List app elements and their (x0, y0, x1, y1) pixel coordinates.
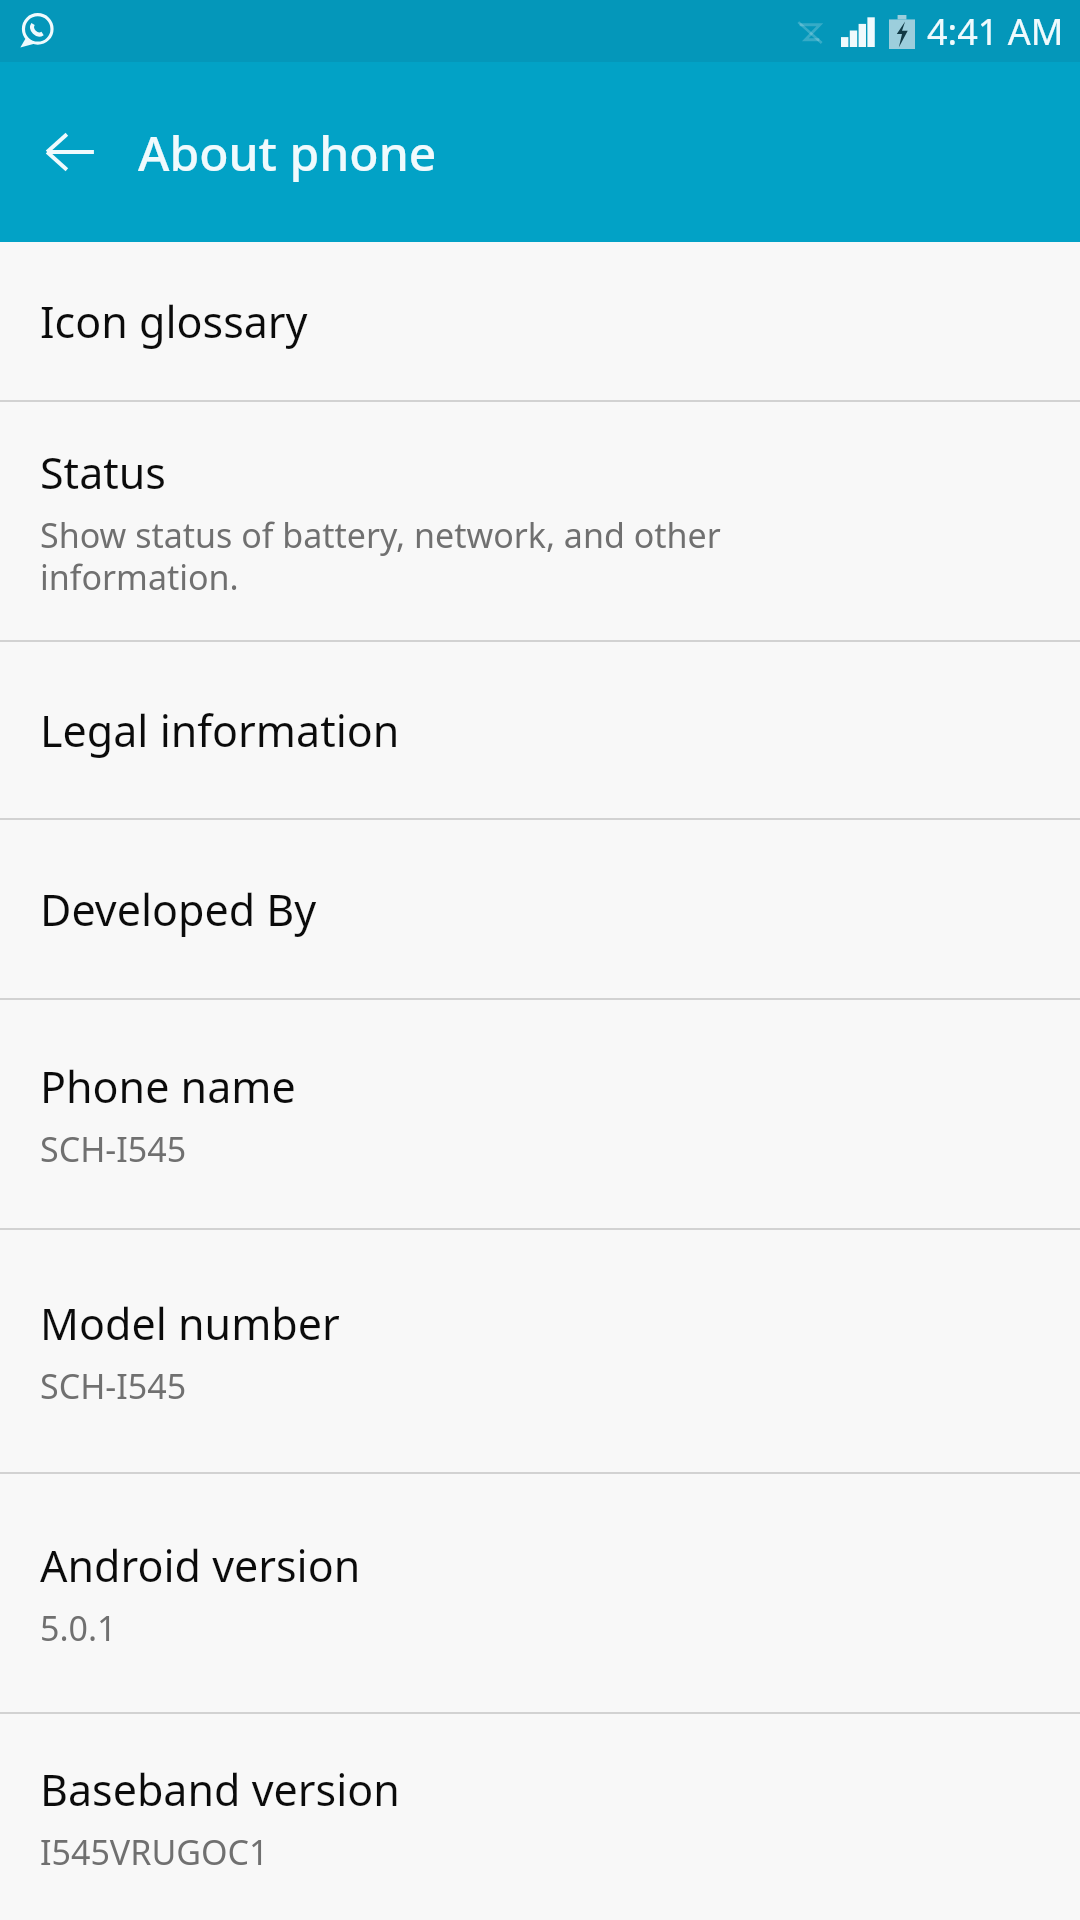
button[interactable]: Baseband version (0, 1714, 1080, 1920)
button[interactable]: Status (0, 402, 1080, 640)
staticText: Icon glossary (40, 292, 308, 351)
button[interactable]: Icon glossary (0, 242, 1080, 400)
staticText: SCH-I545 (40, 1126, 187, 1172)
staticText: Baseband version (40, 1760, 400, 1819)
staticText: About phone (138, 120, 437, 185)
button[interactable]: Legal information (0, 642, 1080, 818)
staticText: Status (40, 443, 166, 502)
staticText: Phone name (40, 1057, 296, 1116)
button[interactable]: Developed By (0, 820, 1080, 998)
button[interactable]: Back (24, 106, 116, 198)
staticText: SCH-I545 (40, 1363, 187, 1409)
staticText: Developed By (40, 880, 317, 939)
staticText: 5.0.1 (40, 1605, 117, 1651)
staticText: Model number (40, 1294, 340, 1353)
button[interactable]: Phone name (0, 1000, 1080, 1228)
staticText: Legal information (40, 701, 400, 760)
button[interactable]: Android version (0, 1474, 1080, 1712)
staticText: I545VRUGOC1 (40, 1829, 269, 1875)
staticText: Android version (40, 1536, 361, 1595)
button[interactable]: Model number (0, 1230, 1080, 1472)
staticText: 4:41 AM (927, 7, 1064, 56)
staticText: Show status of battery, network, and oth… (40, 512, 721, 600)
